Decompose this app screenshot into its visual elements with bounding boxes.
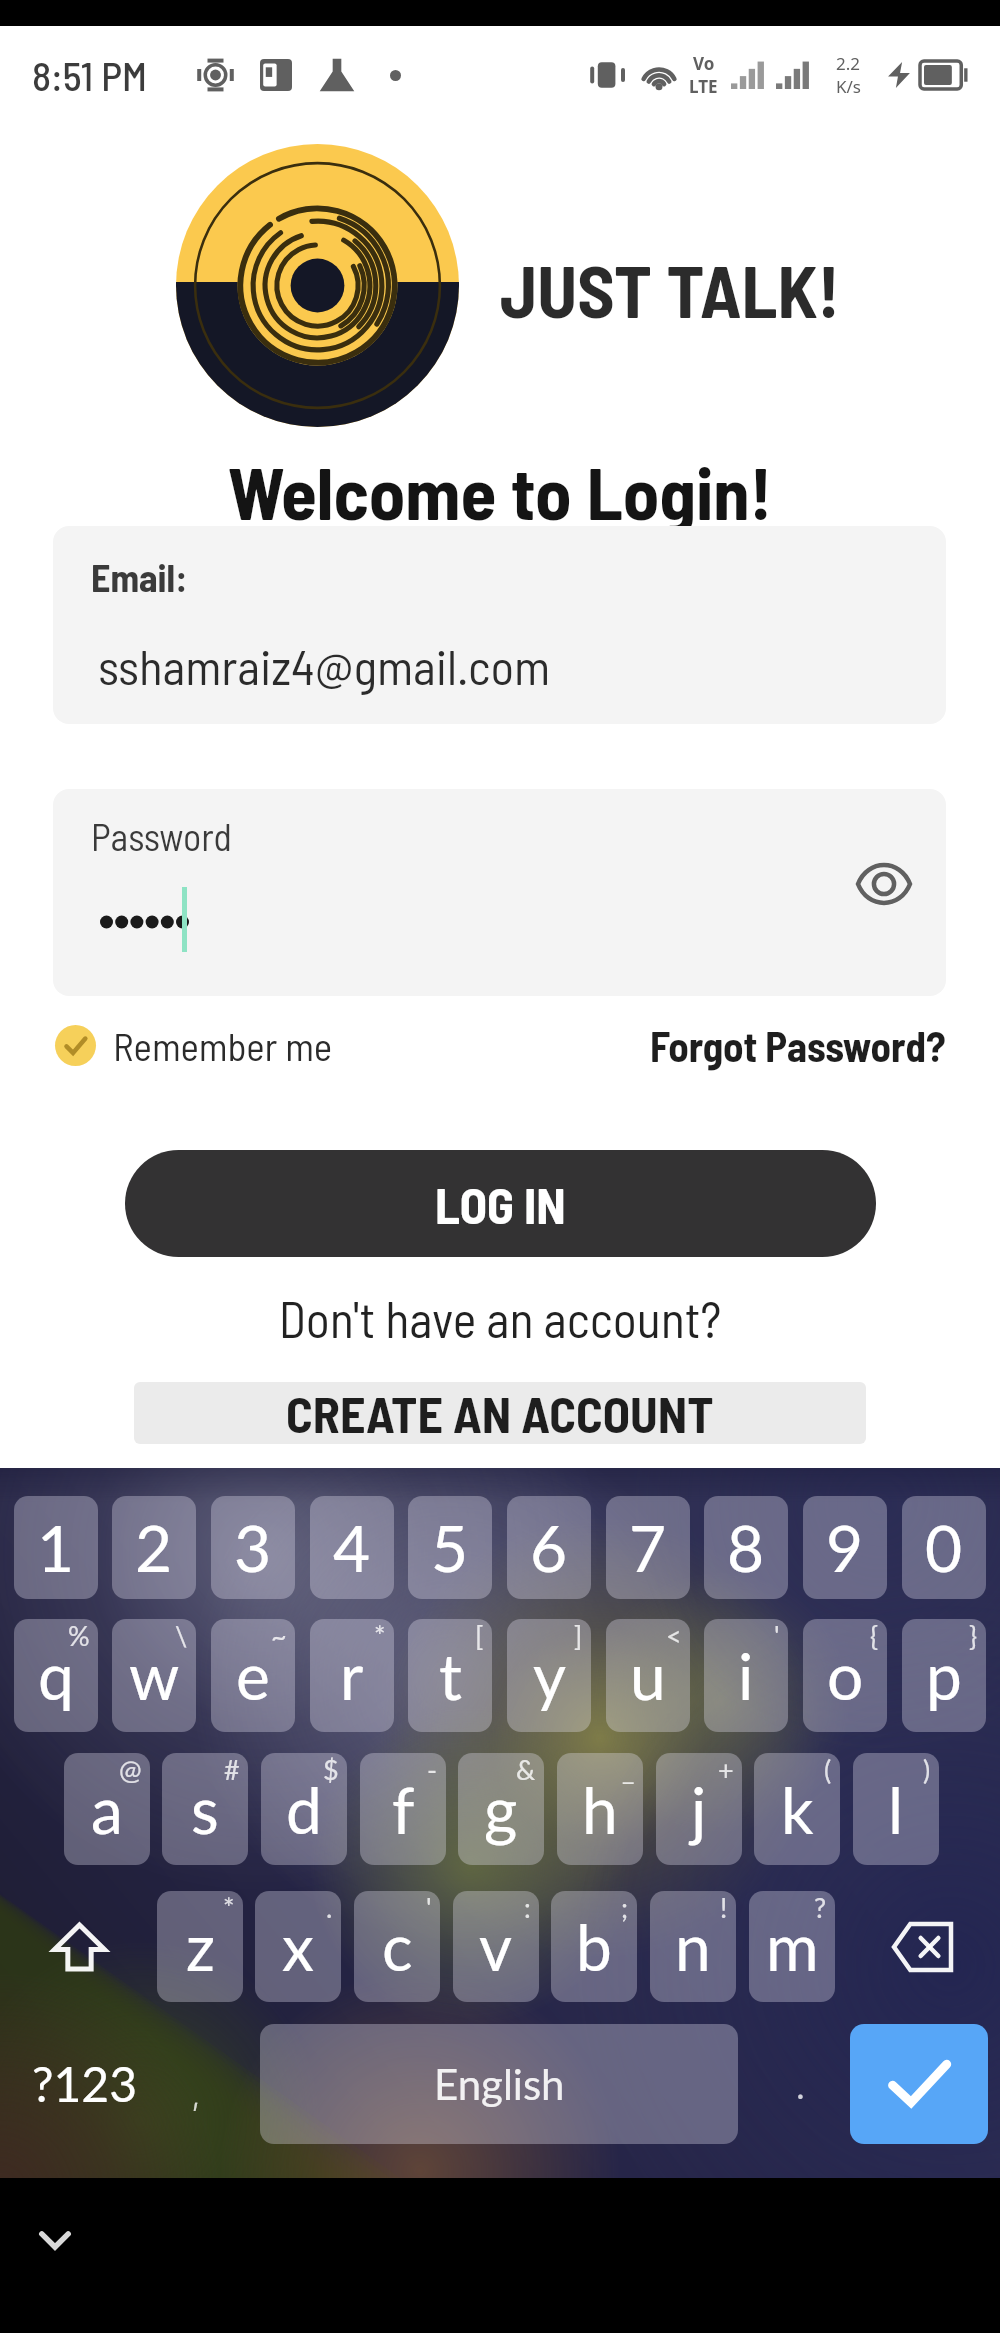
- button[interactable]: 2: [112, 1496, 196, 1599]
- button[interactable]: j: [656, 1753, 742, 1865]
- button[interactable]: c: [354, 1891, 440, 2002]
- staticText: -: [427, 1753, 438, 1785]
- button[interactable]: f: [360, 1753, 446, 1865]
- staticText: Welcome to Login!: [0, 447, 1000, 535]
- staticText: Email:: [91, 554, 188, 600]
- button[interactable]: Remember me: [55, 1022, 333, 1069]
- button[interactable]: l: [853, 1753, 939, 1865]
- button[interactable]: d: [261, 1753, 347, 1865]
- button[interactable]: 6: [507, 1496, 591, 1599]
- button[interactable]: p: [902, 1619, 986, 1732]
- staticText: }: [969, 1619, 978, 1651]
- staticText: 3: [234, 1509, 272, 1586]
- staticText: .: [796, 2061, 805, 2107]
- button[interactable]: Hide keyboard: [31, 2216, 79, 2264]
- staticText: @: [119, 1753, 142, 1785]
- staticText: g: [484, 1771, 518, 1848]
- button[interactable]: b: [551, 1891, 637, 2002]
- staticText: ?123: [32, 2055, 137, 2113]
- staticText: K/s: [836, 75, 861, 98]
- button[interactable]: Password: [53, 789, 946, 996]
- staticText: ]: [574, 1619, 583, 1651]
- staticText: b: [576, 1908, 612, 1985]
- button[interactable]: v: [453, 1891, 539, 2002]
- button[interactable]: CREATE AN ACCOUNT: [134, 1382, 866, 1444]
- button[interactable]: n: [650, 1891, 736, 2002]
- button[interactable]: a: [64, 1753, 150, 1865]
- staticText: n: [675, 1908, 711, 1985]
- button[interactable]: .: [760, 2024, 840, 2144]
- staticText: r: [340, 1637, 364, 1714]
- button[interactable]: ?123: [14, 2024, 154, 2144]
- staticText: i: [738, 1637, 754, 1714]
- staticText: <: [666, 1619, 682, 1651]
- staticText: u: [630, 1637, 666, 1714]
- button[interactable]: w: [112, 1619, 196, 1732]
- button[interactable]: Enter: [850, 2024, 988, 2144]
- button[interactable]: r: [310, 1619, 394, 1732]
- staticText: Password: [91, 813, 232, 859]
- button[interactable]: Show password: [850, 850, 918, 918]
- button[interactable]: LOG IN: [125, 1150, 876, 1257]
- button[interactable]: o: [803, 1619, 887, 1732]
- staticText: f: [392, 1771, 415, 1848]
- staticText: .: [326, 1891, 333, 1923]
- button[interactable]: Email:: [53, 526, 946, 724]
- staticText: LTE: [689, 75, 718, 98]
- staticText: 4: [333, 1509, 371, 1586]
- staticText: ': [426, 1891, 432, 1923]
- staticText: 8:51 PM: [32, 51, 147, 99]
- staticText: k: [781, 1771, 814, 1848]
- button[interactable]: 3: [211, 1496, 295, 1599]
- button[interactable]: t: [408, 1619, 492, 1732]
- button[interactable]: e: [211, 1619, 295, 1732]
- staticText: ~: [271, 1619, 287, 1651]
- button[interactable]: 5: [408, 1496, 492, 1599]
- staticText: *: [223, 1891, 235, 1923]
- button[interactable]: 9: [803, 1496, 887, 1599]
- staticText: l: [888, 1771, 904, 1848]
- staticText: %: [68, 1619, 90, 1651]
- button[interactable]: k: [754, 1753, 840, 1865]
- staticText: CREATE AN ACCOUNT: [286, 1383, 714, 1443]
- button[interactable]: g: [458, 1753, 544, 1865]
- button[interactable]: 1: [14, 1496, 98, 1599]
- staticText: :: [524, 1891, 531, 1923]
- button[interactable]: m: [749, 1891, 835, 2002]
- staticText: t: [439, 1637, 462, 1714]
- staticText: English: [434, 2059, 565, 2109]
- button[interactable]: Shift: [14, 1891, 144, 2002]
- button[interactable]: z: [157, 1891, 243, 2002]
- staticText: {: [870, 1619, 879, 1651]
- button[interactable]: h: [557, 1753, 643, 1865]
- button[interactable]: Forgot Password?: [650, 1021, 946, 1070]
- button[interactable]: i: [704, 1619, 788, 1732]
- staticText: h: [582, 1771, 618, 1848]
- staticText: y: [533, 1637, 566, 1714]
- staticText: 2.2: [836, 52, 861, 75]
- staticText: 1: [37, 1509, 75, 1586]
- button[interactable]: u: [606, 1619, 690, 1732]
- button[interactable]: English: [260, 2024, 738, 2144]
- button[interactable]: s: [162, 1753, 248, 1865]
- staticText: Vo: [693, 52, 715, 75]
- staticText: (: [824, 1753, 832, 1785]
- button[interactable]: Backspace: [858, 1891, 986, 2002]
- staticText: j: [691, 1771, 707, 1848]
- button[interactable]: 8: [704, 1496, 788, 1599]
- button[interactable]: 7: [606, 1496, 690, 1599]
- button[interactable]: 4: [310, 1496, 394, 1599]
- staticText: a: [91, 1771, 123, 1848]
- staticText: Remember me: [113, 1022, 333, 1069]
- button[interactable]: 0: [902, 1496, 986, 1599]
- button[interactable]: y: [507, 1619, 591, 1732]
- button[interactable]: q: [14, 1619, 98, 1732]
- staticText: Forgot Password?: [650, 1021, 946, 1070]
- staticText: 6: [530, 1509, 568, 1586]
- staticText: Don't have an account?: [0, 1288, 1000, 1348]
- staticText: e: [236, 1637, 270, 1714]
- staticText: LOG IN: [435, 1174, 566, 1234]
- staticText: c: [382, 1908, 413, 1985]
- staticText: q: [38, 1637, 74, 1714]
- button[interactable]: x: [255, 1891, 341, 2002]
